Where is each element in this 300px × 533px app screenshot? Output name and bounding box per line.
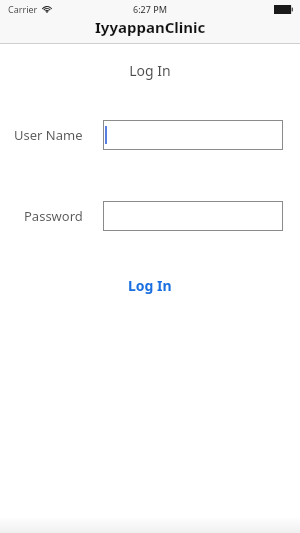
button[interactable]: Log In — [114, 271, 186, 300]
button[interactable]: User Name — [0, 118, 300, 152]
staticText: User Name — [14, 126, 83, 144]
staticText: Password — [24, 207, 83, 225]
button[interactable]: Password — [0, 199, 300, 233]
staticText: 6:27 PM — [133, 3, 167, 15]
staticText: IyyappanClinic — [95, 17, 206, 37]
staticText: Carrier — [8, 3, 38, 15]
staticText: Log In — [128, 276, 172, 295]
staticText: Log In — [129, 61, 171, 80]
